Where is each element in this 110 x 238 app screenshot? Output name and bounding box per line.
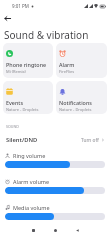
staticText: FireFlies [59, 69, 75, 74]
staticText: SOUND [6, 124, 19, 129]
staticText: 9:01 PM [12, 3, 29, 9]
staticText: Sound & vibration [4, 28, 89, 42]
button[interactable]: Ring volume [0, 148, 110, 174]
button[interactable]: Back [1, 12, 14, 25]
staticText: Events [6, 99, 24, 106]
button[interactable]: Media volume [0, 200, 110, 226]
staticText: Phone ringtone [6, 61, 47, 68]
button[interactable]: Recents [26, 224, 40, 236]
button[interactable]: Back [70, 224, 84, 236]
staticText: Alarm [59, 61, 75, 68]
staticText: Media volume [13, 204, 50, 211]
staticText: Nature - Droplets [6, 107, 39, 112]
staticText: Silent/DND [6, 136, 38, 144]
button[interactable]: Phone ringtone [3, 43, 53, 78]
button[interactable]: Events [3, 81, 53, 114]
staticText: Alarm volume [13, 178, 50, 185]
staticText: Nature - Droplets [59, 107, 92, 112]
staticText: Ring volume [13, 152, 46, 159]
button[interactable]: Silent/DND [0, 132, 110, 148]
button[interactable]: Home [48, 224, 62, 236]
button[interactable]: Notifications [56, 81, 107, 114]
staticText: Notifications [59, 99, 92, 106]
staticText: Turn off [81, 137, 99, 144]
button[interactable]: Alarm volume [0, 174, 110, 200]
button[interactable]: Alarm [56, 43, 107, 78]
staticText: Mi (Remix) [6, 69, 26, 74]
